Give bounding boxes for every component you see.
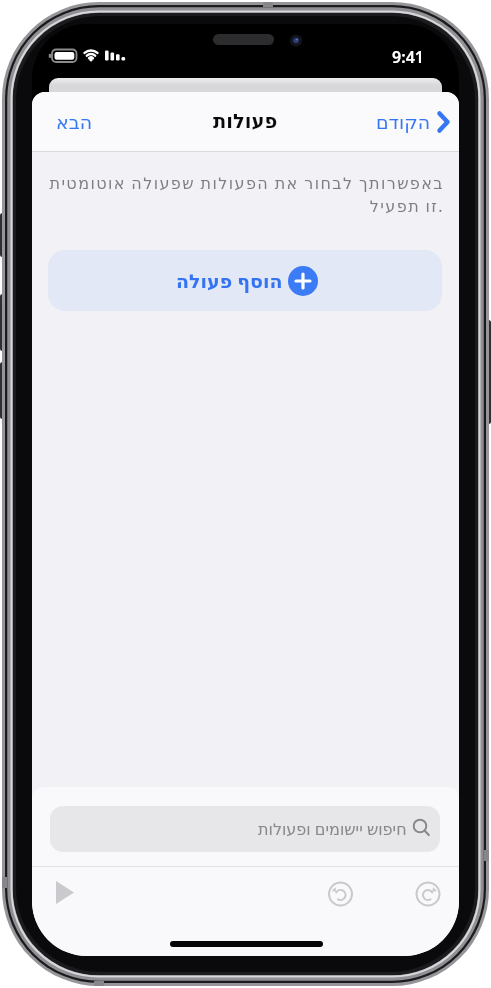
staticText: הוסף פעולה [176, 268, 283, 294]
staticText: 9:41 [388, 46, 428, 68]
button[interactable] [322, 876, 359, 912]
button[interactable]: הקודם [376, 111, 450, 133]
button[interactable]: חיפוש יישומים ופעולות [50, 806, 440, 852]
staticText: זו תפעיל. [44, 195, 444, 217]
staticText: באפשרותך לבחור את הפעולות שפעולה אוטומטי… [44, 172, 444, 194]
staticText: הקודם [376, 111, 431, 133]
button[interactable] [409, 876, 446, 912]
staticText: חיפוש יישומים ופעולות [258, 818, 407, 840]
button[interactable]: הבא [56, 111, 93, 133]
staticText: פעולות [213, 110, 278, 133]
button[interactable]: הוסף פעולה [48, 250, 442, 311]
button[interactable] [48, 873, 84, 909]
